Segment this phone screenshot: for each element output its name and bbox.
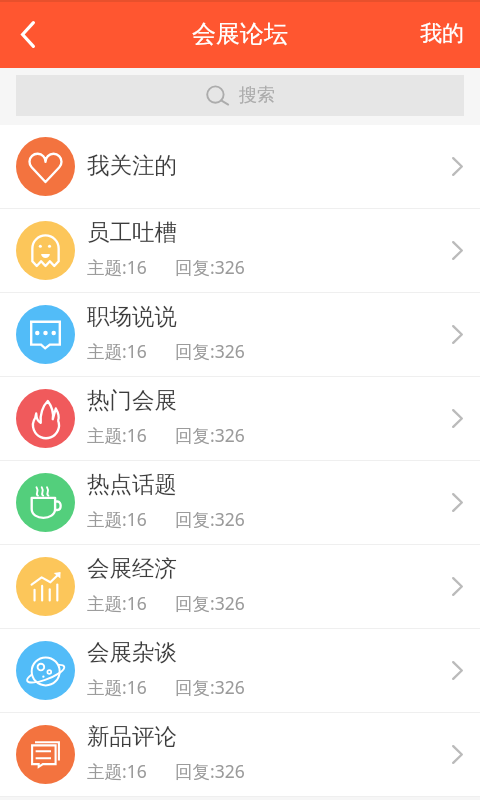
- staticText: 新品评论: [87, 722, 177, 750]
- staticText: 回复:326: [175, 339, 245, 363]
- button[interactable]: 搜索: [16, 75, 464, 116]
- staticText: 职场说说: [87, 302, 177, 330]
- button[interactable]: 热点话题: [0, 461, 480, 544]
- staticText: 主题:16: [87, 255, 147, 279]
- button[interactable]: 员工吐槽: [0, 209, 480, 292]
- staticText: 主题:16: [87, 339, 147, 363]
- staticText: 我关注的: [87, 151, 177, 179]
- staticText: 回复:326: [175, 591, 245, 615]
- staticText: 回复:326: [175, 507, 245, 531]
- staticText: 主题:16: [87, 507, 147, 531]
- staticText: 回复:326: [175, 255, 245, 279]
- button[interactable]: 会展经济: [0, 545, 480, 628]
- staticText: 会展经济: [87, 554, 177, 582]
- staticText: 热门会展: [87, 386, 177, 414]
- button[interactable]: 我的: [404, 0, 480, 68]
- staticText: 回复:326: [175, 759, 245, 783]
- button[interactable]: Back: [0, 0, 56, 68]
- button[interactable]: 热门会展: [0, 377, 480, 460]
- staticText: 回复:326: [175, 675, 245, 699]
- staticText: 会展论坛: [192, 19, 288, 49]
- staticText: 会展杂谈: [87, 638, 177, 666]
- staticText: 主题:16: [87, 591, 147, 615]
- staticText: 搜索: [239, 84, 275, 107]
- staticText: 回复:326: [175, 423, 245, 447]
- button[interactable]: 职场说说: [0, 293, 480, 376]
- staticText: 主题:16: [87, 759, 147, 783]
- staticText: 员工吐槽: [87, 218, 177, 246]
- staticText: 主题:16: [87, 675, 147, 699]
- staticText: 主题:16: [87, 423, 147, 447]
- button[interactable]: 我关注的: [0, 125, 480, 208]
- staticText: 我的: [420, 20, 464, 48]
- button[interactable]: 会展杂谈: [0, 629, 480, 712]
- staticText: 热点话题: [87, 470, 177, 498]
- button[interactable]: 新品评论: [0, 713, 480, 796]
